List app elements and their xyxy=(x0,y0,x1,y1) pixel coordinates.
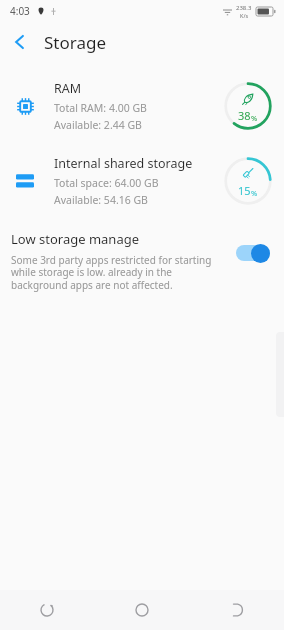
staticText: Internal shared storage xyxy=(54,155,193,172)
staticText: Available: 54.16 GB xyxy=(54,193,148,207)
staticText: Some 3rd party apps restricted for start… xyxy=(11,253,228,292)
staticText: % xyxy=(251,188,258,198)
staticText: 238.3 xyxy=(236,4,252,12)
button[interactable]: Home xyxy=(94,590,189,630)
button[interactable]: Low storage manage toggle, on xyxy=(236,242,274,264)
staticText: Total RAM: 4.00 GB xyxy=(54,101,147,115)
button[interactable]: Internal shared storage xyxy=(0,143,284,218)
staticText: 4:03 xyxy=(10,4,30,18)
staticText: Total space: 64.00 GB xyxy=(54,176,159,190)
button[interactable]: Clean up, 38 percent used xyxy=(222,80,274,132)
button[interactable]: Back xyxy=(189,590,284,630)
staticText: Low storage manage xyxy=(11,230,140,248)
button[interactable]: Recents xyxy=(0,590,94,630)
staticText: Storage xyxy=(44,31,107,54)
staticText: 38 xyxy=(238,108,251,123)
staticText: Available: 2.44 GB xyxy=(54,118,142,132)
staticText: K/s xyxy=(240,12,249,19)
button[interactable]: Clean up, 15 percent used xyxy=(222,155,274,207)
button[interactable]: Low storage manage xyxy=(0,224,284,302)
button[interactable]: RAM xyxy=(0,68,284,143)
staticText: % xyxy=(251,113,258,123)
staticText: RAM xyxy=(54,80,82,97)
staticText: 15 xyxy=(238,183,251,198)
button[interactable]: Back xyxy=(0,22,40,62)
